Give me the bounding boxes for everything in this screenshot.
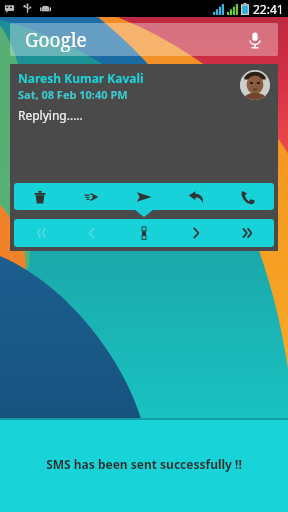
- staticText: Replying.....: [18, 107, 83, 123]
- button[interactable]: Voice search: [244, 29, 266, 51]
- button[interactable]: Send: [118, 183, 170, 210]
- button[interactable]: Next: [170, 219, 222, 247]
- button[interactable]: Last: [222, 219, 274, 247]
- staticText: 22:41: [253, 1, 284, 17]
- button[interactable]: Reply: [170, 183, 222, 210]
- button[interactable]: Previous: [66, 219, 118, 247]
- staticText: SMS has been sent successfully !!: [0, 456, 288, 472]
- staticText: Sat, 08 Feb 10:40 PM: [18, 87, 128, 102]
- button[interactable]: Contact photo: [240, 70, 270, 100]
- button[interactable]: Call: [222, 183, 274, 210]
- staticText: Naresh Kumar Kavali: [18, 70, 144, 86]
- button[interactable]: First: [14, 219, 66, 247]
- staticText: Google: [25, 27, 87, 53]
- button[interactable]: Delete: [14, 183, 66, 210]
- button[interactable]: Forward: [66, 183, 118, 210]
- button[interactable]: Page indicator: [118, 219, 170, 247]
- button[interactable]: Google: [10, 23, 278, 56]
